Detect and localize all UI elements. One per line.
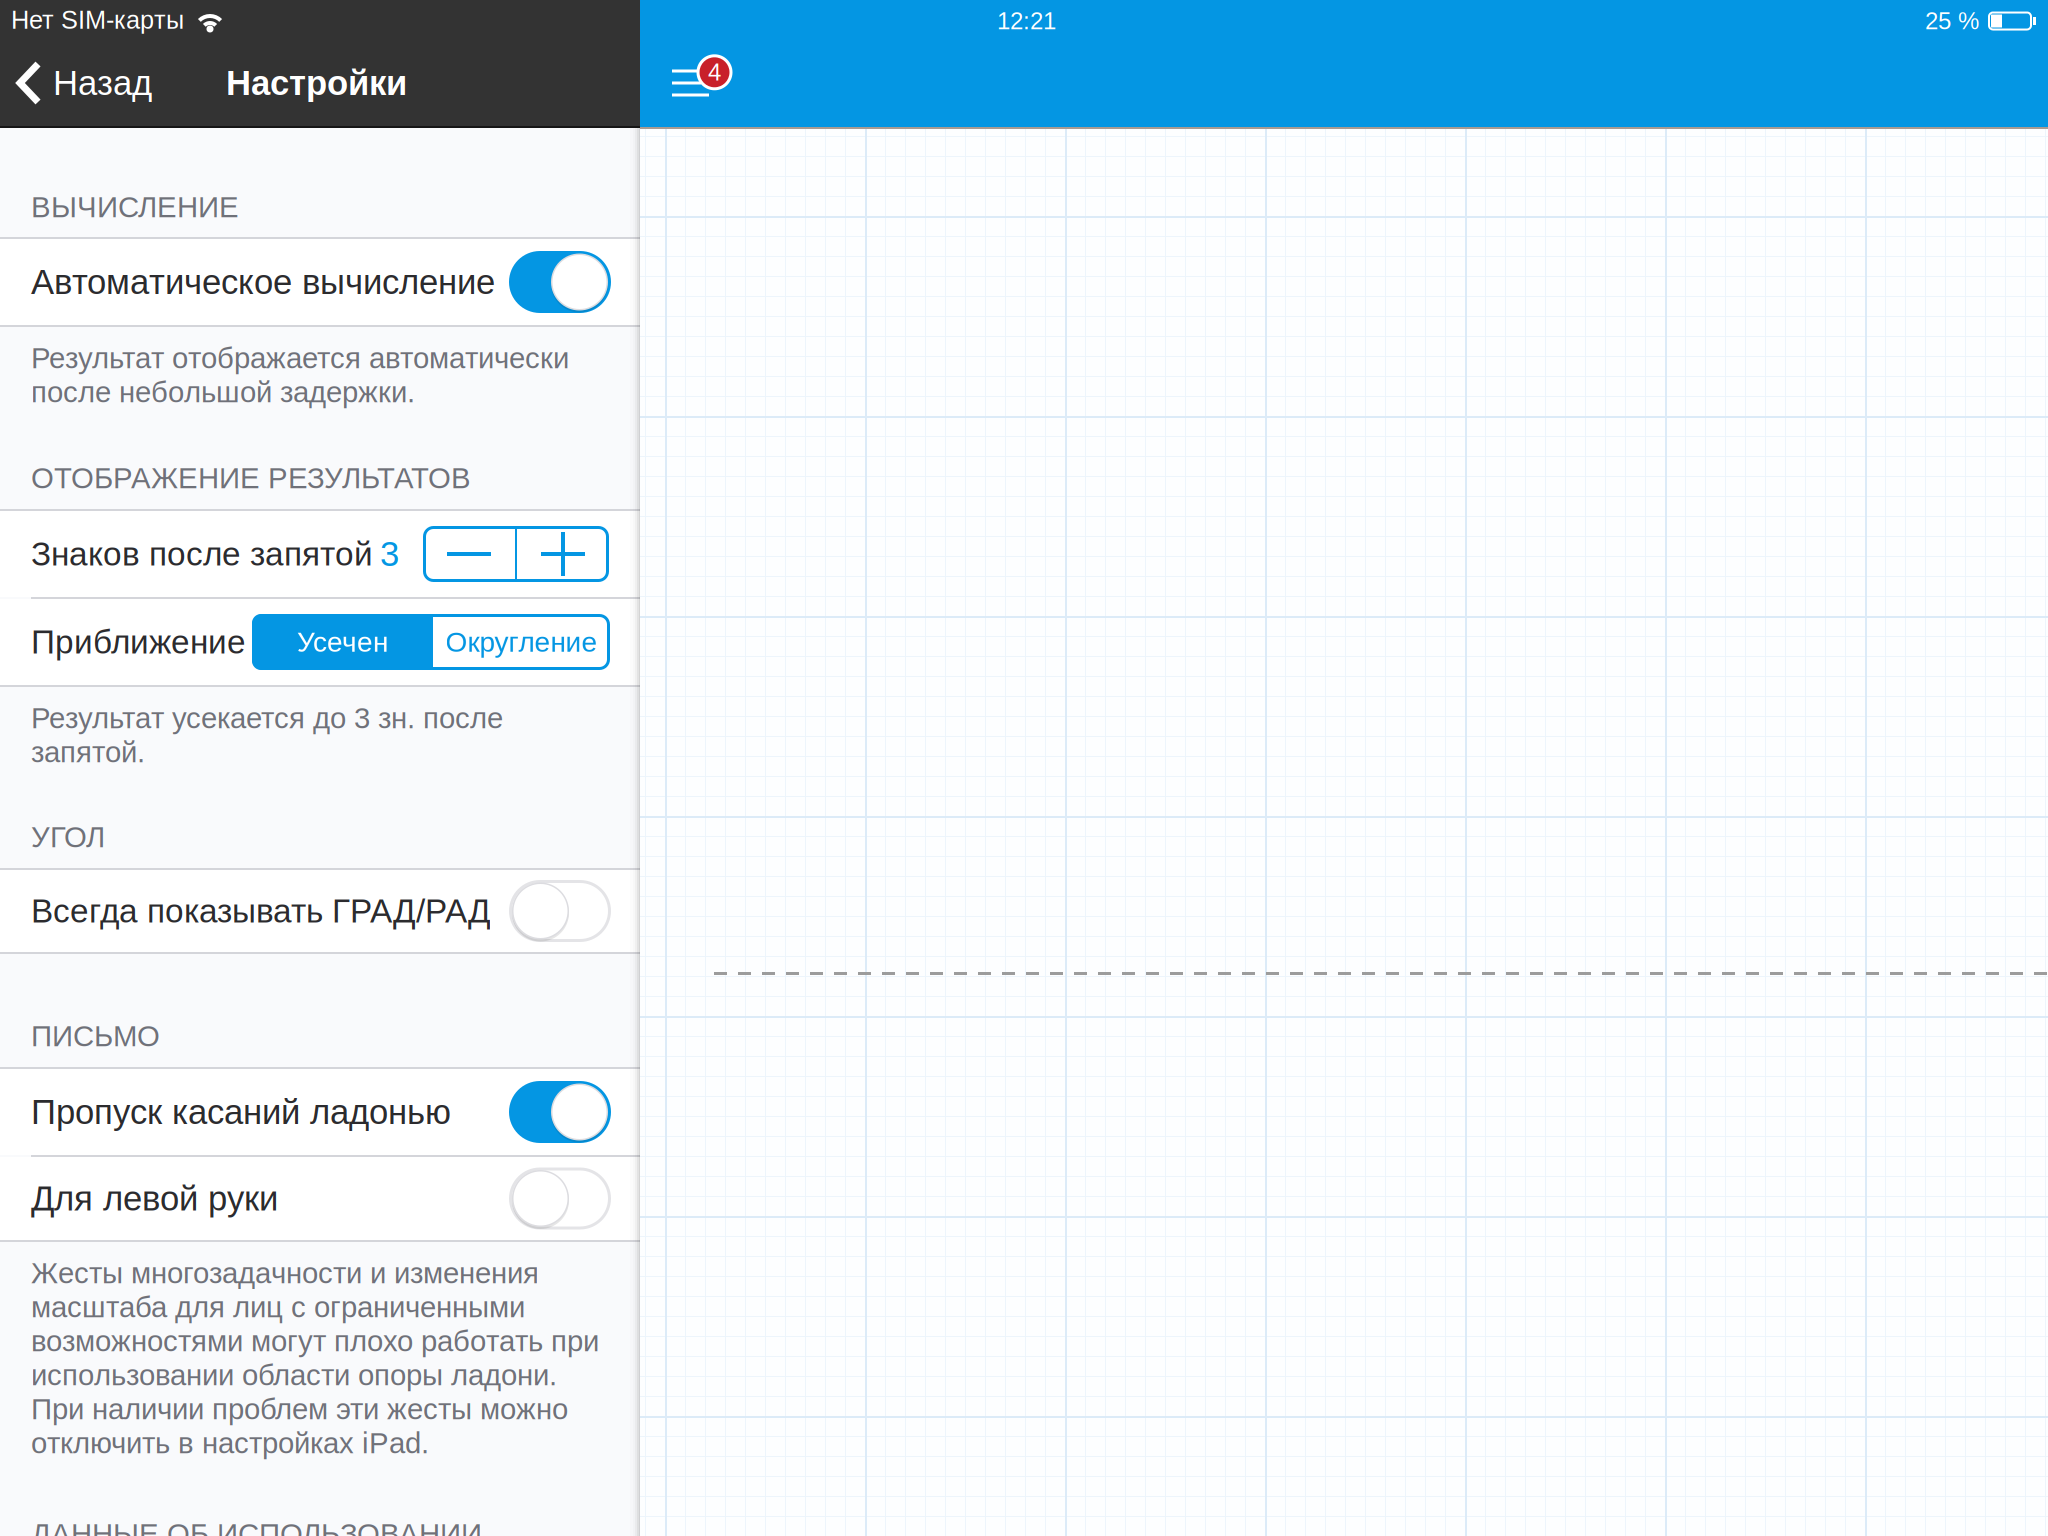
button[interactable]: Decrease [423, 526, 515, 582]
staticText: ОТОБРАЖЕНИЕ РЕЗУЛЬТАТОВ [31, 462, 471, 494]
staticText: При наличии проблем эти жесты можно [31, 1393, 568, 1425]
staticText: Назад [53, 64, 152, 102]
staticText: Для левой руки [31, 1179, 278, 1218]
button[interactable]: Menu [660, 47, 780, 127]
button[interactable]: Для левой руки [0, 1157, 640, 1240]
staticText: 3 [380, 535, 399, 573]
staticText: Округление [445, 626, 597, 658]
button[interactable]: Enabled [509, 1081, 611, 1143]
button[interactable]: Пропуск касаний ладонью [0, 1069, 640, 1155]
button[interactable]: Всегда показывать ГРАД/РАД [0, 870, 640, 952]
staticText: Нет SIM-карты [11, 6, 184, 34]
staticText: Знаков после запятой [31, 535, 373, 573]
staticText: отключить в настройках iPad. [31, 1427, 429, 1459]
button[interactable]: Приближение [0, 599, 640, 685]
staticText: УГОЛ [31, 821, 105, 853]
staticText: Всегда показывать ГРАД/РАД [31, 892, 491, 930]
staticText: возможностями могут плохо работать при [31, 1325, 599, 1357]
button[interactable]: Автоматическое вычисление [0, 239, 640, 325]
staticText: Настройки [226, 64, 407, 102]
button[interactable]: Enabled [509, 251, 611, 313]
staticText: запятой. [31, 736, 145, 768]
staticText: Пропуск касаний ладонью [31, 1093, 451, 1131]
staticText: 12:21 [997, 8, 1056, 34]
staticText: ВЫЧИСЛЕНИЕ [31, 191, 239, 223]
staticText: 25 % [1925, 8, 1979, 34]
staticText: Автоматическое вычисление [31, 263, 495, 301]
button[interactable]: Disabled [509, 880, 611, 942]
staticText: Приближение [31, 623, 246, 661]
button[interactable]: Округление [433, 614, 610, 670]
staticText: ПИСЬМО [31, 1020, 160, 1052]
button[interactable]: Усечен [252, 614, 433, 670]
button[interactable]: Назад [0, 58, 164, 108]
staticText: после небольшой задержки. [31, 376, 415, 408]
button[interactable]: Знаков после запятой [0, 511, 640, 597]
staticText: Результат отображается автоматически [31, 342, 569, 374]
button[interactable]: Disabled [509, 1167, 611, 1229]
staticText: Усечен [297, 626, 388, 658]
staticText: масштаба для лиц с ограниченными [31, 1291, 525, 1323]
staticText: 4 [708, 59, 721, 86]
button[interactable]: Increase [517, 526, 609, 582]
staticText: использовании области опоры ладони. [31, 1359, 557, 1391]
staticText: Жесты многозадачности и изменения [31, 1257, 539, 1289]
staticText: ДАННЫЕ ОБ ИСПОЛЬЗОВАНИИ [31, 1518, 482, 1536]
staticText: Результат усекается до 3 зн. после [31, 702, 503, 734]
